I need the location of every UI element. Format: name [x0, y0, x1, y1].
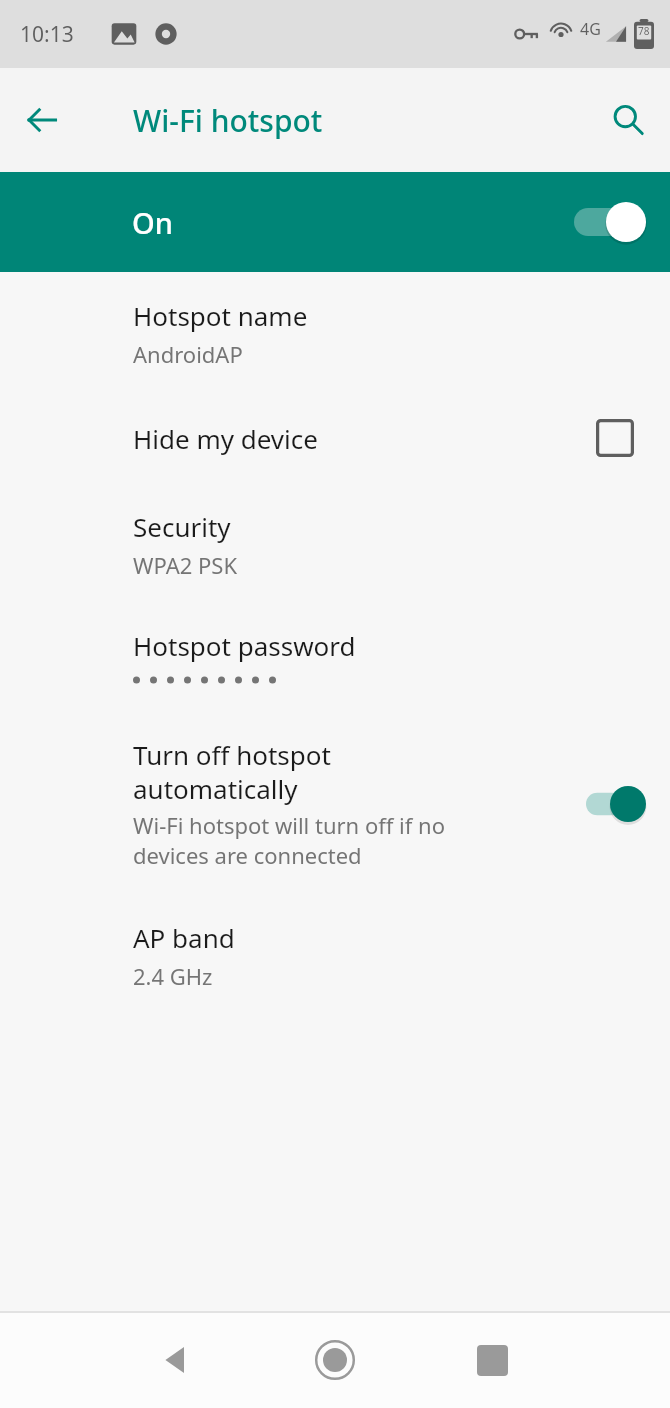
- button[interactable]: Hotspot password: [0, 602, 670, 711]
- staticText: Hotspot name: [133, 298, 308, 333]
- staticText: On: [132, 203, 173, 242]
- staticText: 2.4 GHz: [133, 961, 213, 991]
- staticText: Wi-Fi hotspot will turn off if no device…: [133, 810, 445, 870]
- button[interactable]: Home: [306, 1331, 364, 1389]
- button[interactable]: Hotspot name: [0, 272, 670, 391]
- button[interactable]: AP band: [0, 894, 670, 1013]
- staticText: 4G: [580, 18, 601, 40]
- staticText: AP band: [133, 920, 235, 955]
- button[interactable]: On: [0, 172, 670, 272]
- button[interactable]: Back: [146, 1331, 204, 1389]
- staticText: 10:13: [20, 20, 74, 49]
- staticText: Wi-Fi hotspot: [133, 100, 323, 141]
- staticText: Hotspot password: [133, 628, 356, 663]
- button[interactable]: Back: [14, 92, 70, 148]
- button[interactable]: Recent apps: [463, 1331, 521, 1389]
- button[interactable]: Hide my device: [0, 391, 670, 485]
- staticText: 78: [638, 24, 650, 38]
- button[interactable]: Turn off hotspot automatically: [0, 711, 670, 894]
- staticText: Hide my device: [133, 421, 596, 456]
- staticText: Turn off hotspot automatically: [133, 737, 331, 806]
- staticText: AndroidAP: [133, 339, 243, 369]
- staticText: WPA2 PSK: [133, 550, 238, 580]
- staticText: Security: [133, 509, 231, 544]
- button[interactable]: Search: [600, 92, 656, 148]
- button[interactable]: Security: [0, 485, 670, 602]
